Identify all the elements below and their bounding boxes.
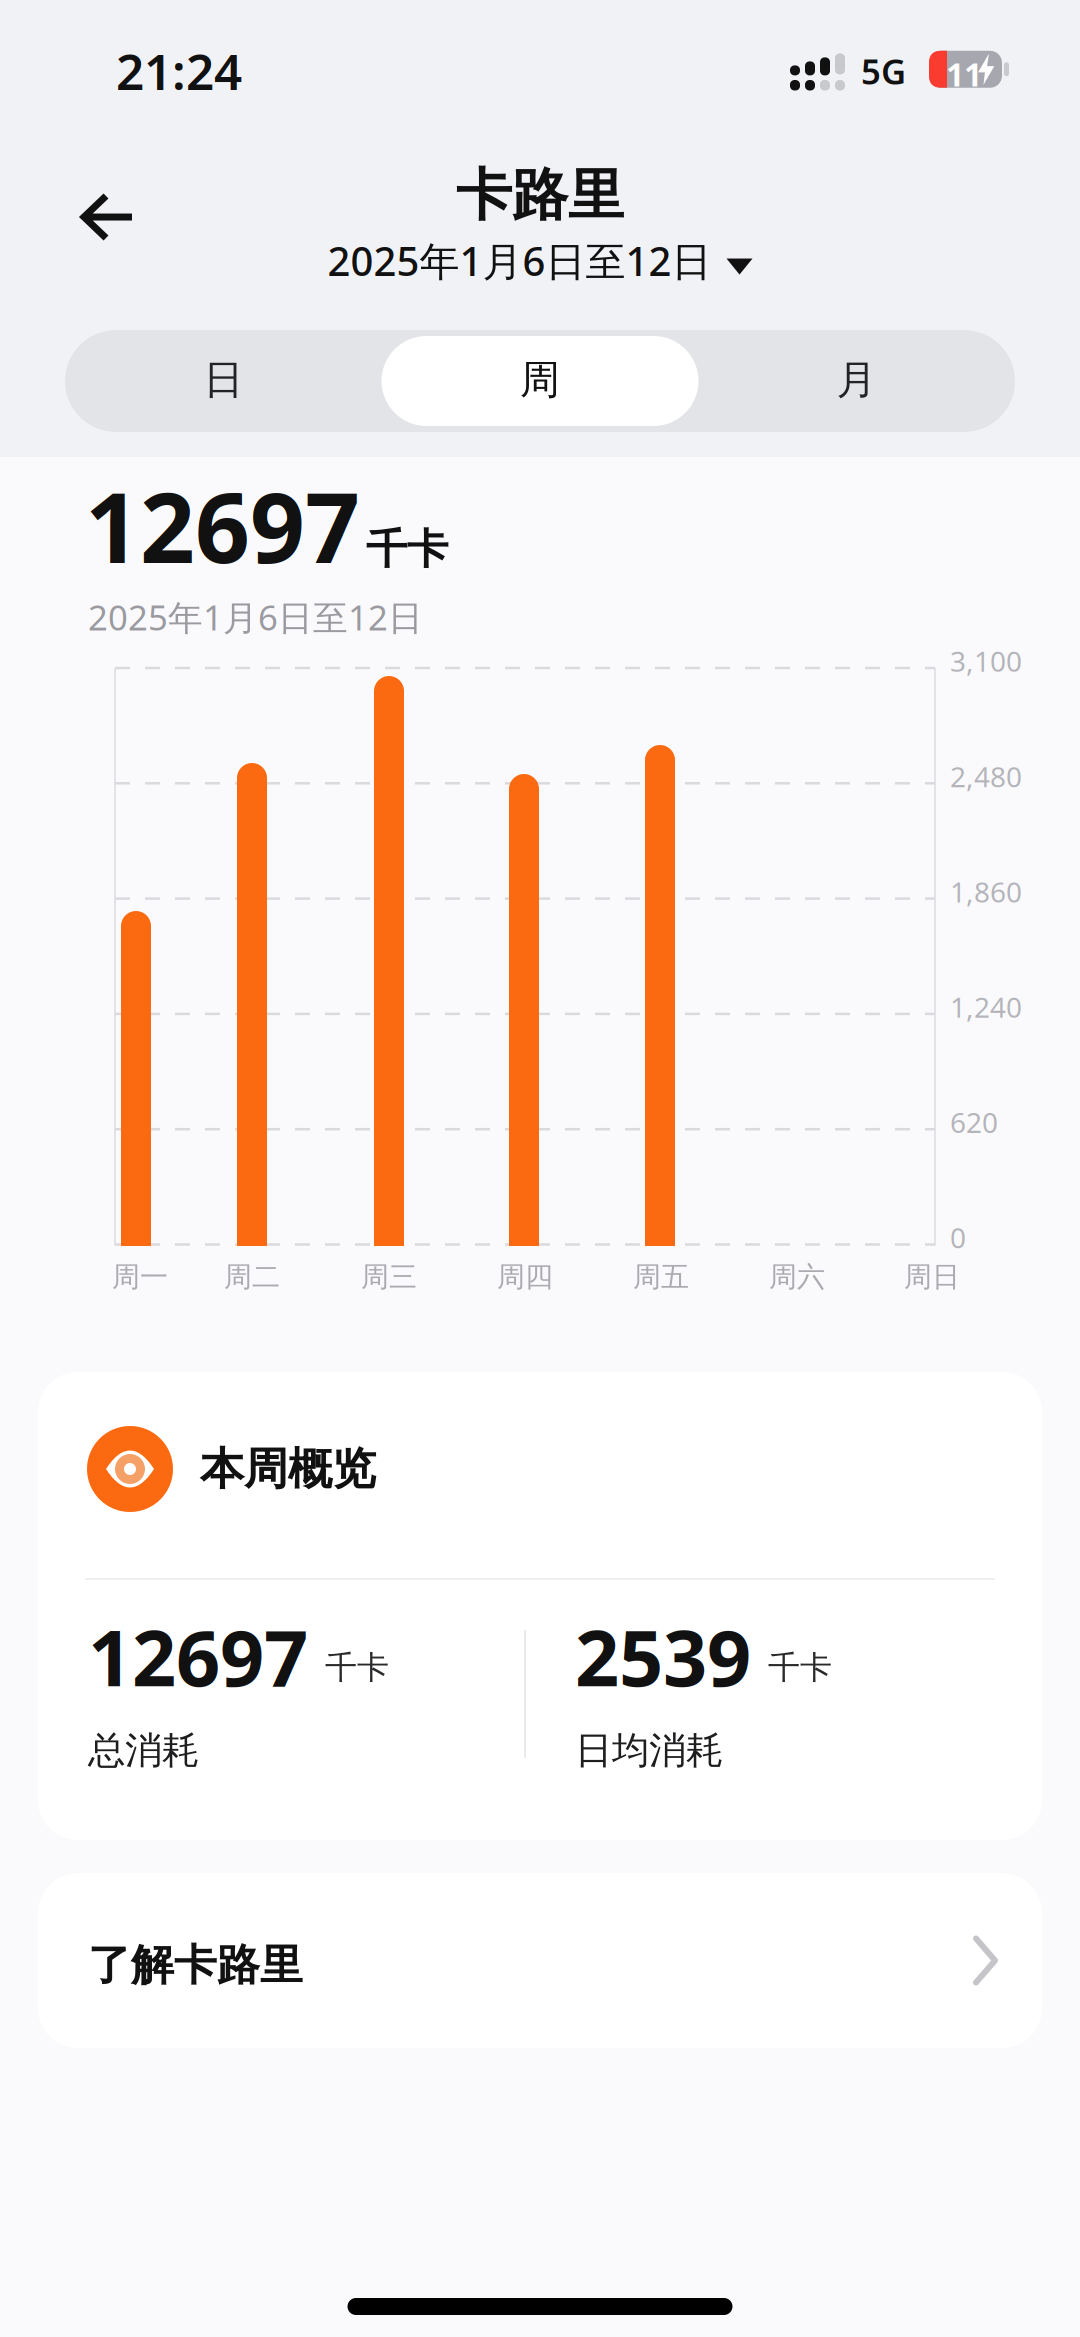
- staticText: 周: [520, 355, 560, 404]
- staticText: 千卡: [366, 524, 448, 575]
- staticText: 千卡: [325, 1648, 389, 1687]
- staticText: 3,100: [950, 642, 1022, 680]
- staticText: 620: [950, 1104, 998, 1141]
- staticText: 周四: [497, 1260, 553, 1294]
- staticText: 周二: [224, 1260, 280, 1294]
- button[interactable]: 了解卡路里: [38, 1873, 1042, 2048]
- staticText: 总消耗: [88, 1728, 199, 1774]
- staticText: 1,240: [950, 988, 1022, 1025]
- staticText: 本周概览: [200, 1442, 376, 1496]
- staticText: 千卡: [768, 1648, 832, 1687]
- staticText: 0: [950, 1219, 966, 1256]
- staticText: 卡路里: [456, 161, 624, 230]
- staticText: 5G: [861, 48, 906, 94]
- button[interactable]: 2025年1月6日至12日: [327, 234, 752, 287]
- staticText: 2539: [575, 1605, 751, 1708]
- staticText: 日: [203, 355, 243, 404]
- button[interactable]: 日: [65, 330, 382, 430]
- staticText: 2025年1月6日至12日: [88, 594, 423, 640]
- staticText: 2,480: [950, 758, 1022, 795]
- staticText: 12697: [88, 1605, 308, 1708]
- staticText: 周五: [633, 1260, 689, 1294]
- staticText: 周一: [112, 1260, 168, 1294]
- staticText: 1,860: [950, 873, 1022, 910]
- staticText: 2025年1月6日至12日: [327, 234, 711, 287]
- staticText: 周六: [769, 1260, 825, 1294]
- staticText: 周三: [361, 1260, 417, 1294]
- staticText: 日均消耗: [575, 1728, 723, 1774]
- staticText: 12697: [85, 462, 360, 589]
- button[interactable]: 月: [65, 330, 382, 430]
- staticText: 21:24: [116, 38, 242, 103]
- staticText: 了解卡路里: [88, 1939, 303, 1991]
- staticText: 周日: [904, 1260, 960, 1294]
- staticText: 11: [946, 53, 982, 95]
- staticText: 月: [836, 355, 876, 404]
- button[interactable]: 周: [65, 330, 382, 430]
